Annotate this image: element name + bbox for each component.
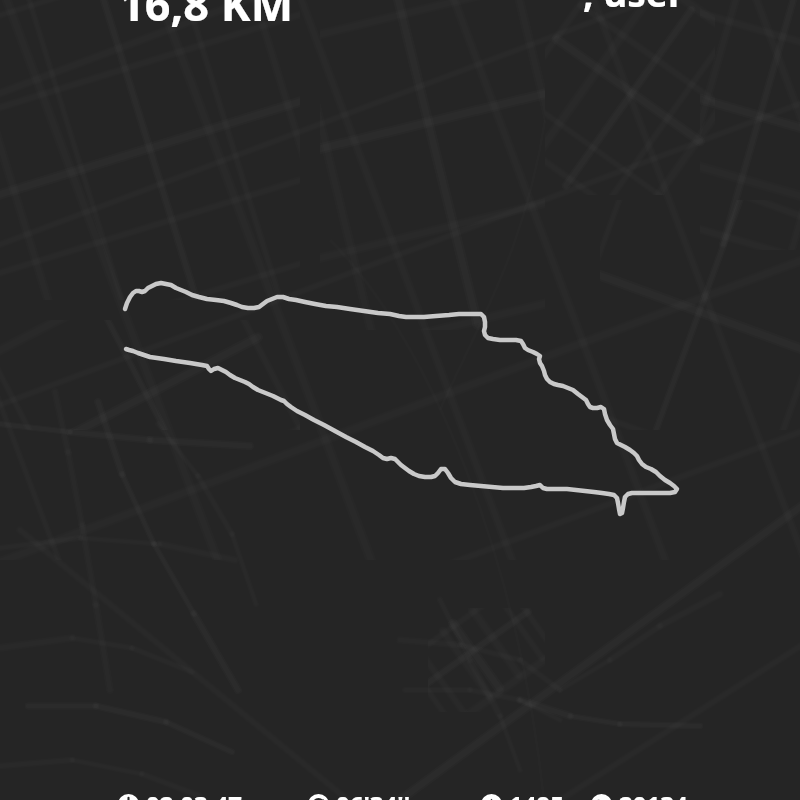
staticText: 20134 xyxy=(619,788,688,800)
button[interactable]: Duration xyxy=(118,788,242,800)
staticText: 06'34'' xyxy=(336,788,411,800)
button[interactable]: Average pace xyxy=(308,788,411,800)
staticText: 1495 xyxy=(509,788,564,800)
button[interactable]: Calories xyxy=(481,788,564,800)
button[interactable]: Steps xyxy=(591,788,688,800)
staticText: 02:03:47 xyxy=(146,788,242,800)
staticText: , user xyxy=(583,0,685,17)
staticText: 16,8 KM xyxy=(119,0,294,34)
